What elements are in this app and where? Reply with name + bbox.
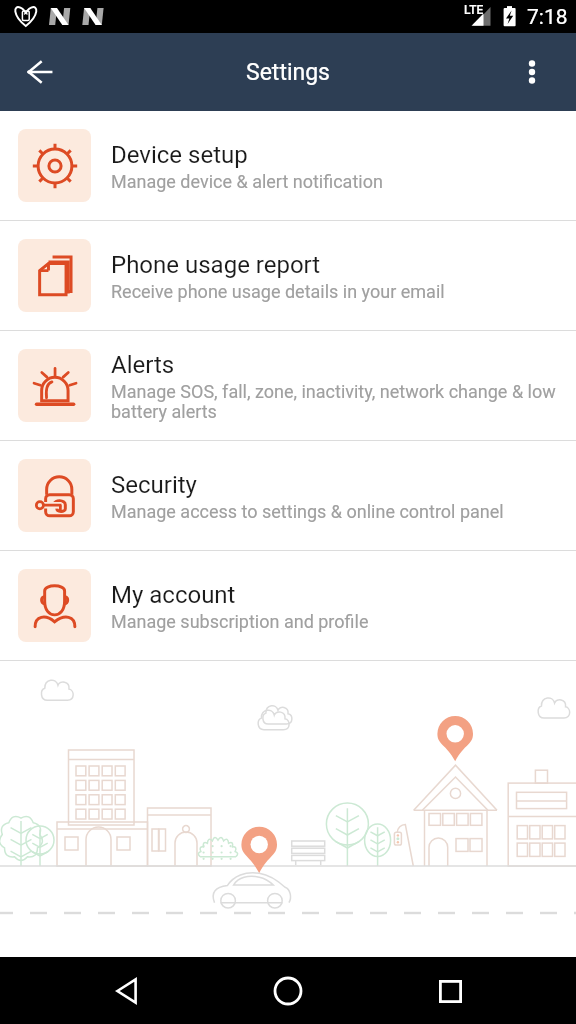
staticText: Device setup	[111, 141, 248, 169]
staticText: Security	[111, 471, 197, 499]
button[interactable]: My account	[0, 551, 576, 660]
button[interactable]: Navigate up	[13, 45, 67, 99]
button[interactable]: Alerts	[0, 331, 576, 440]
button[interactable]: Home	[257, 960, 319, 1022]
staticText: Manage device & alert notification	[111, 171, 383, 192]
staticText: Settings	[246, 59, 330, 86]
button[interactable]: Recent apps	[419, 960, 481, 1022]
staticText: Manage access to settings & online contr…	[111, 501, 504, 522]
button[interactable]: Security	[0, 441, 576, 550]
staticText: My account	[111, 581, 236, 609]
staticText: Alerts	[111, 351, 175, 379]
staticText: Manage subscription and profile	[111, 611, 369, 632]
button[interactable]: Phone usage report	[0, 221, 576, 330]
staticText: LTE	[464, 3, 484, 17]
button[interactable]: Device setup	[0, 111, 576, 220]
staticText: 7:18	[527, 5, 568, 30]
button[interactable]: More options	[508, 48, 556, 96]
staticText: Receive phone usage details in your emai…	[111, 281, 445, 302]
staticText: Manage SOS, fall, zone, inactivity, netw…	[111, 381, 562, 422]
staticText: Phone usage report	[111, 251, 321, 279]
button[interactable]: Back	[95, 960, 157, 1022]
